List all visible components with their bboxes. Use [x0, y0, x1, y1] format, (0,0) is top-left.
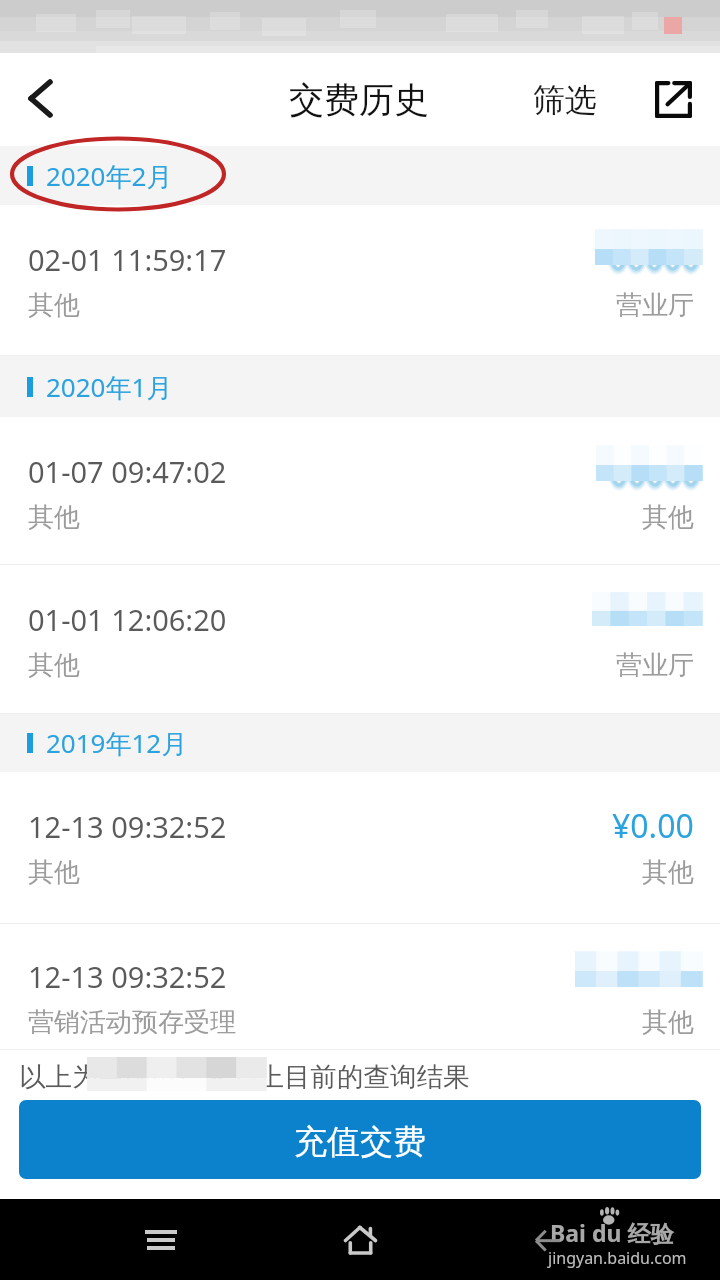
staticText: 其他 [642, 856, 694, 889]
button[interactable]: 01-01 12:06:20 [0, 565, 720, 714]
staticText: 2019年12月 [46, 725, 188, 761]
staticText: 交费历史 [289, 78, 429, 122]
staticText: 筛选 [533, 80, 597, 120]
staticText: 01-07 09:47:02 [28, 452, 227, 491]
staticText: 12-13 09:32:52 [28, 957, 227, 996]
staticText: 营业厅 [616, 649, 694, 682]
button[interactable]: 2020年1月 [0, 356, 720, 417]
button[interactable]: 12-13 09:32:52 [0, 772, 720, 924]
button[interactable]: 01-07 09:47:02 [0, 417, 720, 565]
staticText: 其他 [28, 649, 80, 682]
button[interactable]: 12-13 09:32:52 [0, 924, 720, 1050]
button[interactable]: Home [329, 1209, 391, 1271]
button[interactable]: 充值交费 [19, 1100, 701, 1179]
staticText: 其他 [28, 501, 80, 534]
staticText: 12-13 09:32:52 [28, 807, 227, 846]
staticText: 充值交费 [294, 1121, 426, 1163]
staticText: jingyan.baidu.com [548, 1247, 687, 1269]
staticText: 02-01 11:59:17 [28, 240, 227, 279]
staticText: 2020年2月 [46, 158, 173, 194]
staticText: 其他 [28, 856, 80, 889]
button[interactable]: Menu [130, 1209, 192, 1271]
button[interactable]: Back [0, 53, 78, 146]
staticText: 其他 [642, 501, 694, 534]
button[interactable]: Share [643, 53, 703, 146]
staticText: 2020年1月 [46, 369, 173, 405]
button[interactable]: 筛选 [517, 53, 613, 146]
button[interactable]: 2020年2月 [0, 146, 720, 205]
staticText: Bai du 经验 [550, 1217, 674, 1248]
button[interactable]: 02-01 11:59:17 [0, 205, 720, 356]
button[interactable]: 2019年12月 [0, 714, 720, 772]
staticText: 01-01 12:06:20 [28, 600, 227, 639]
staticText: 以上为中国电信客户上目前的查询结果 [19, 1060, 470, 1093]
staticText: 营业厅 [616, 289, 694, 322]
staticText: ¥0.00 [612, 804, 694, 848]
staticText: 其他 [642, 1006, 694, 1039]
staticText: 营销活动预存受理 [28, 1006, 236, 1039]
staticText: 其他 [28, 289, 80, 322]
